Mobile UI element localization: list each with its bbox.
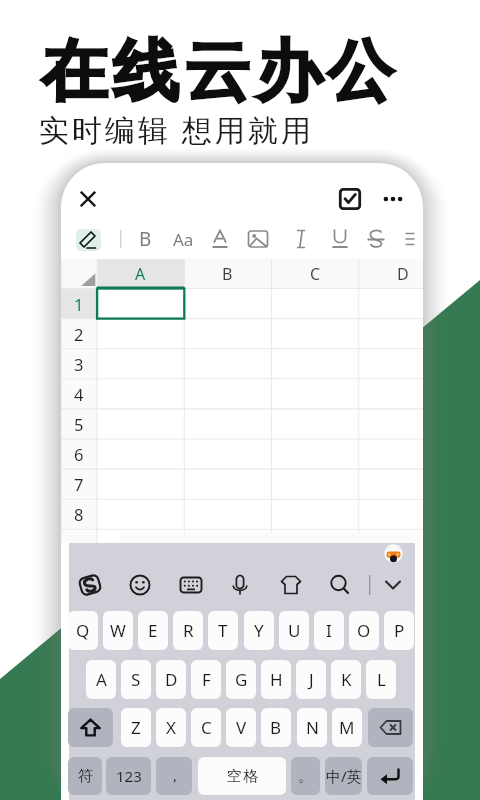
staticText: M — [339, 716, 355, 739]
staticText: J — [309, 668, 314, 691]
button[interactable]: 空格 — [198, 757, 286, 795]
staticText: B — [270, 716, 282, 739]
staticText: 2 — [74, 323, 84, 345]
button[interactable]: A — [86, 660, 116, 699]
button[interactable]: U — [279, 611, 309, 650]
staticText: S — [131, 668, 141, 691]
staticText: N — [306, 716, 319, 739]
button[interactable]: F — [191, 660, 221, 699]
button[interactable]: V — [226, 708, 256, 747]
button[interactable]: 8 — [61, 499, 97, 529]
button[interactable]: 7 — [61, 469, 97, 499]
staticText: C — [310, 263, 321, 285]
staticText: A — [96, 668, 107, 691]
button[interactable]: 中/英 — [325, 757, 362, 795]
staticText: W — [110, 619, 126, 642]
button[interactable]: O — [349, 611, 379, 650]
staticText: B — [139, 226, 152, 252]
staticText: B — [222, 263, 233, 285]
staticText: 6 — [74, 443, 84, 465]
button[interactable]: K — [331, 660, 361, 699]
staticText: Q — [76, 619, 90, 642]
button[interactable]: More options — [377, 183, 409, 215]
staticText: K — [341, 668, 352, 691]
button[interactable]: Aa — [167, 223, 199, 255]
staticText: V — [236, 716, 247, 739]
staticText: 实时编辑 想用就用 — [39, 109, 314, 150]
staticText: Y — [254, 619, 264, 642]
button[interactable]: 5 — [61, 409, 97, 439]
button[interactable]: Backspace — [368, 708, 413, 747]
button[interactable]: J — [296, 660, 326, 699]
button[interactable]: Themes — [275, 569, 307, 601]
button[interactable]: 3 — [61, 349, 97, 379]
button[interactable]: P — [384, 611, 414, 650]
button[interactable]: Text color — [204, 223, 236, 255]
button[interactable]: Edit — [76, 229, 101, 251]
button[interactable]: Underline — [324, 223, 356, 255]
button[interactable]: D — [156, 660, 186, 699]
button[interactable]: I — [314, 611, 344, 650]
staticText: 符 — [78, 767, 93, 786]
button[interactable]: Q — [68, 611, 98, 650]
button[interactable]: Search — [324, 569, 356, 601]
staticText: P — [394, 619, 405, 642]
button[interactable]: 6 — [61, 439, 97, 469]
button[interactable]: 4 — [61, 379, 97, 409]
button[interactable]: Voice input — [224, 569, 256, 601]
staticText: 5 — [74, 413, 84, 435]
button[interactable]: Enter — [367, 757, 413, 795]
button[interactable]: Strikethrough — [360, 223, 392, 255]
button[interactable]: Z — [121, 708, 151, 747]
button[interactable]: Close — [72, 183, 104, 215]
button[interactable]: 。 — [291, 757, 320, 795]
button[interactable]: B — [261, 708, 291, 747]
staticText: Aa — [173, 228, 194, 251]
button[interactable]: 2 — [61, 319, 97, 349]
button[interactable]: N — [297, 708, 327, 747]
staticText: 123 — [116, 766, 142, 786]
button[interactable]: 1 — [61, 289, 97, 319]
button[interactable]: Hide keyboard — [377, 569, 409, 601]
button[interactable]: H — [261, 660, 291, 699]
button[interactable]: E — [138, 611, 168, 650]
staticText: ， — [167, 767, 182, 786]
staticText: A — [135, 263, 146, 285]
button[interactable]: G — [226, 660, 256, 699]
button[interactable]: L — [366, 660, 396, 699]
button[interactable]: Done — [334, 183, 366, 215]
button[interactable]: T — [208, 611, 238, 650]
button[interactable]: R — [173, 611, 203, 650]
staticText: U — [288, 619, 301, 642]
button[interactable]: Insert image — [242, 223, 274, 255]
button[interactable]: 123 — [106, 757, 151, 795]
button[interactable]: Y — [244, 611, 274, 650]
staticText: 在线云办公 — [41, 30, 399, 114]
button[interactable]: D — [359, 259, 423, 289]
staticText: 1 — [74, 293, 84, 315]
button[interactable]: 符 — [68, 757, 102, 795]
button[interactable]: Keyboard settings — [175, 569, 207, 601]
button[interactable]: C — [272, 259, 359, 289]
button[interactable]: Shift — [68, 708, 113, 747]
button[interactable]: A — [97, 259, 184, 289]
staticText: H — [270, 668, 283, 691]
button[interactable]: Italic — [285, 223, 317, 255]
button[interactable]: M — [332, 708, 362, 747]
staticText: D — [165, 668, 178, 691]
staticText: C — [201, 716, 212, 739]
staticText: I — [326, 619, 332, 642]
button[interactable]: X — [156, 708, 186, 747]
button[interactable]: Assistant — [384, 544, 403, 563]
staticText: D — [397, 263, 409, 285]
button[interactable]: S — [121, 660, 151, 699]
staticText: 3 — [74, 353, 84, 375]
button[interactable]: Emoji — [124, 569, 156, 601]
button[interactable]: ， — [156, 757, 192, 795]
button[interactable]: Input method — [74, 569, 106, 601]
button[interactable]: W — [103, 611, 133, 650]
button[interactable]: C — [191, 708, 221, 747]
button[interactable]: B — [184, 259, 271, 289]
button[interactable]: More formats — [394, 223, 423, 255]
button[interactable]: B — [129, 223, 161, 255]
